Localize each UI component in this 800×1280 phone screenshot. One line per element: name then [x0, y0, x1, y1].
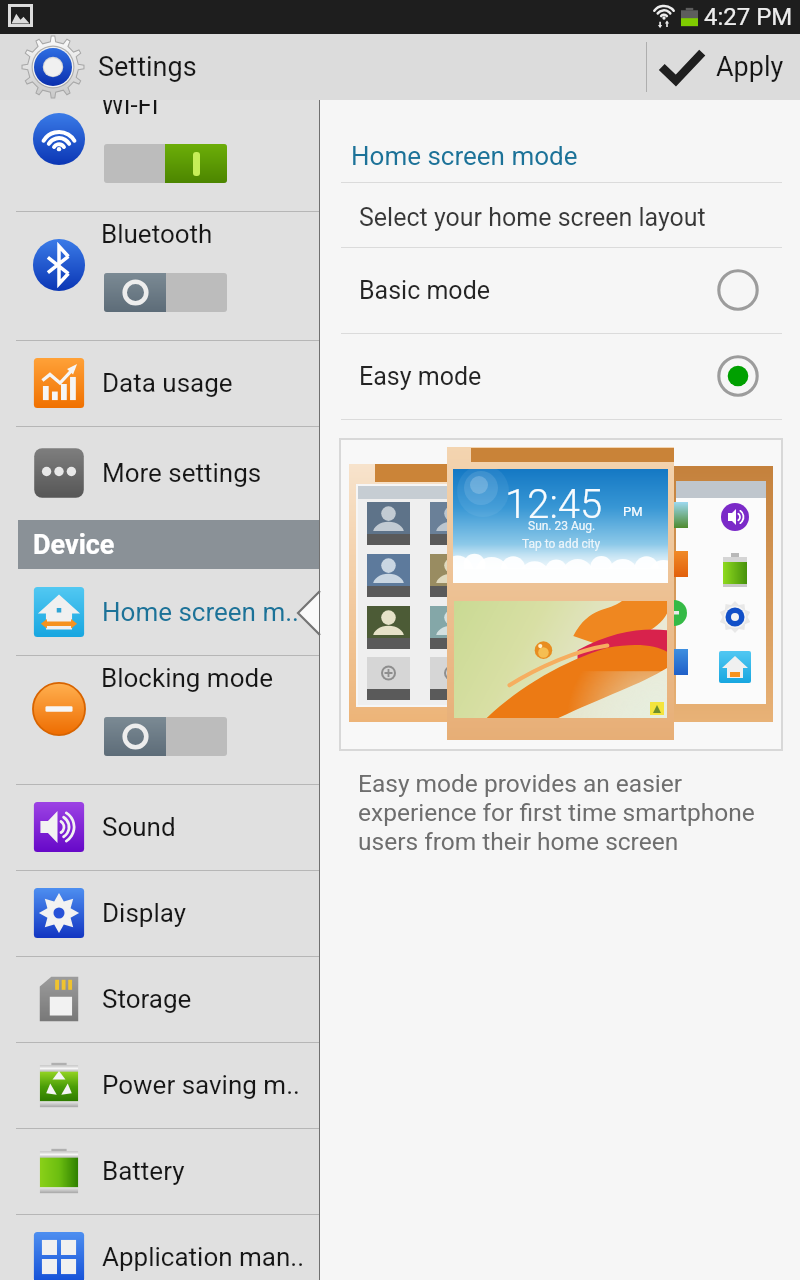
staticText: Bluetooth — [101, 219, 213, 249]
staticText: Tap to add city — [522, 537, 601, 551]
other: Screenshot captured — [8, 4, 33, 27]
staticText: Sun. 23 Aug. — [528, 519, 596, 533]
staticText: Easy mode — [359, 362, 482, 391]
staticText: Blocking mode — [101, 663, 273, 693]
staticText: Device — [33, 529, 115, 561]
staticText: 4:27 PM — [704, 3, 793, 31]
staticText: Wi-Fi — [101, 90, 159, 120]
staticText: Battery — [102, 1156, 185, 1186]
button[interactable]: Storage — [0, 956, 320, 1042]
staticText: Home screen mode — [351, 141, 578, 171]
button[interactable]: Turn on — [104, 273, 227, 312]
staticText: Display — [102, 898, 186, 928]
staticText: 12:45 — [505, 481, 603, 528]
button[interactable]: Data usage — [0, 340, 320, 426]
button[interactable]: More settings — [0, 426, 320, 520]
button[interactable]: Application man.. — [0, 1214, 320, 1280]
staticText: Data usage — [102, 368, 233, 398]
staticText: Apply — [716, 51, 784, 83]
staticText: Storage — [102, 984, 192, 1014]
button[interactable]: Sound — [0, 784, 320, 870]
staticText: Easy mode provides an easier experience … — [358, 769, 755, 856]
staticText: Application man.. — [102, 1242, 305, 1272]
button[interactable]: Apply — [660, 34, 784, 100]
button[interactable]: Battery — [0, 1128, 320, 1214]
staticText: Basic mode — [359, 276, 490, 305]
staticText: Sound — [102, 812, 176, 842]
button[interactable]: Bluetooth — [0, 211, 320, 340]
staticText: Settings — [98, 51, 197, 83]
button[interactable]: Display — [0, 870, 320, 956]
staticText: More settings — [102, 458, 262, 488]
button[interactable]: Wi-Fi — [0, 86, 320, 211]
button[interactable]: Blocking mode — [0, 655, 320, 784]
staticText: Home screen m.. — [102, 597, 299, 627]
button[interactable]: Basic mode — [321, 247, 800, 333]
button[interactable]: Settings — [20, 34, 197, 100]
staticText: Power saving m.. — [102, 1070, 300, 1100]
staticText: Select your home screen layout — [359, 203, 706, 232]
button[interactable]: Power saving m.. — [0, 1042, 320, 1128]
button[interactable]: Easy mode — [321, 333, 800, 419]
button[interactable]: Turn off — [104, 144, 227, 183]
button[interactable]: Turn on — [104, 717, 227, 756]
button[interactable]: Home screen m.. — [0, 569, 320, 655]
staticText: PM — [623, 504, 643, 519]
